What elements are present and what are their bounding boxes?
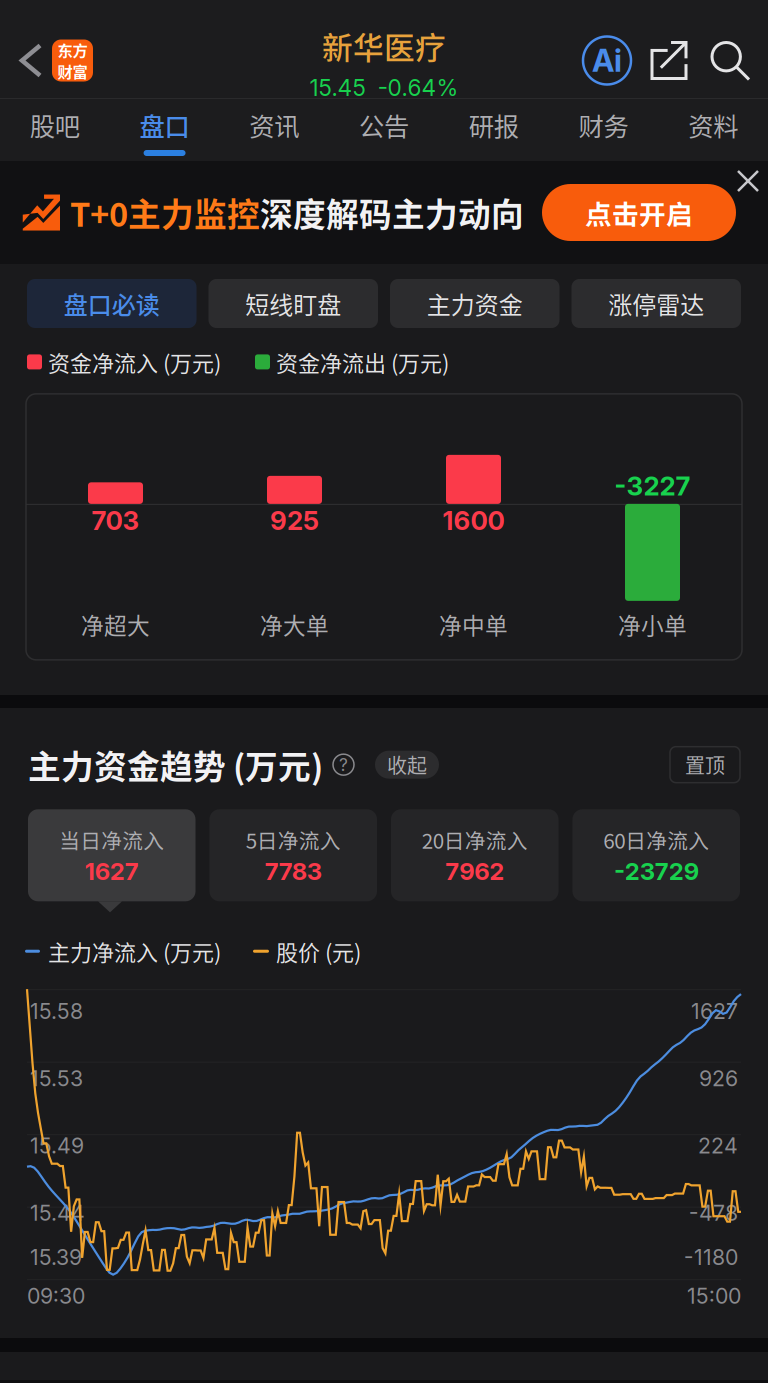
button[interactable]: 研报: [439, 99, 549, 161]
staticText: 703: [91, 505, 139, 536]
staticText: 点击开启: [585, 193, 693, 232]
staticText: 短线盯盘: [245, 286, 341, 321]
staticText: 09:30: [27, 1283, 85, 1309]
staticText: 收起: [387, 750, 427, 779]
button[interactable]: 资料: [658, 99, 768, 161]
staticText: 5日净流入: [246, 825, 341, 855]
staticText: 7962: [445, 857, 504, 886]
button[interactable]: 公告: [329, 99, 439, 161]
staticText: 1627: [85, 857, 139, 886]
staticText: -23729: [614, 857, 699, 886]
staticText: 净大单: [260, 608, 329, 641]
staticText: -478: [689, 1200, 738, 1226]
staticText: 财务: [578, 107, 628, 143]
staticText: 15:00: [687, 1283, 741, 1309]
staticText: 7783: [265, 857, 322, 886]
staticText: 净中单: [439, 608, 508, 641]
staticText: 1600: [442, 505, 504, 536]
button[interactable]: 当日净流入: [28, 809, 195, 901]
staticText: 当日净流入: [59, 825, 164, 855]
staticText: 盘口: [140, 107, 190, 143]
staticText: 15.39: [30, 1244, 82, 1270]
staticText: 15.49: [30, 1133, 84, 1159]
button[interactable]: 点击开启: [542, 184, 736, 241]
staticText: 净超大: [81, 608, 150, 641]
staticText: 东方: [57, 39, 87, 61]
staticText: 置顶: [685, 750, 725, 779]
staticText: 财富: [57, 60, 87, 82]
staticText: 新华医疗: [322, 24, 446, 68]
button[interactable]: AI assistant: [576, 0, 638, 99]
button[interactable]: Search: [700, 0, 768, 99]
staticText: 股价 (元): [276, 935, 361, 967]
button[interactable]: 置顶: [670, 747, 740, 783]
button[interactable]: 60日净流入: [572, 809, 740, 901]
staticText: 盘口必读: [64, 286, 160, 321]
staticText: 15.58: [30, 998, 83, 1024]
staticText: 资金净流出 (万元): [276, 346, 449, 378]
button[interactable]: Share: [638, 0, 700, 99]
button[interactable]: 盘口: [110, 99, 219, 161]
button[interactable]: 股吧: [0, 99, 110, 161]
staticText: 涨停雷达: [608, 286, 704, 321]
button[interactable]: 盘口必读: [27, 279, 196, 328]
button[interactable]: 短线盯盘: [208, 279, 378, 328]
button[interactable]: Back: [0, 0, 52, 99]
staticText: 资料: [688, 107, 738, 143]
staticText: ?: [339, 754, 348, 775]
staticText: -1180: [684, 1244, 738, 1270]
staticText: 资讯: [249, 107, 299, 143]
button[interactable]: East Money home: [52, 28, 93, 70]
button[interactable]: 收起: [375, 751, 439, 779]
staticText: 15.45 -0.64%: [309, 74, 458, 101]
staticText: 主力净流入 (万元): [48, 935, 221, 967]
button[interactable]: 主力资金: [390, 279, 559, 328]
staticText: 20日净流入: [422, 825, 528, 855]
staticText: 15.44: [30, 1200, 85, 1226]
staticText: 925: [270, 505, 319, 536]
staticText: 926: [699, 1065, 738, 1091]
button[interactable]: 资讯: [219, 99, 329, 161]
staticText: 主力资金趋势 (万元): [28, 741, 323, 788]
staticText: 股吧: [30, 107, 80, 143]
staticText: 15.53: [30, 1065, 83, 1091]
button[interactable]: 财务: [549, 99, 658, 161]
staticText: 研报: [469, 107, 519, 143]
staticText: 公告: [359, 107, 409, 143]
button[interactable]: Close banner: [728, 161, 768, 201]
staticText: 224: [698, 1133, 738, 1159]
staticText: 深度解码主力动向: [260, 189, 524, 236]
staticText: Ai: [592, 42, 622, 79]
staticText: 1627: [691, 998, 738, 1024]
staticText: 60日净流入: [603, 825, 709, 855]
staticText: T+0主力监控: [70, 189, 260, 236]
staticText: 资金净流入 (万元): [48, 346, 221, 378]
button[interactable]: 涨停雷达: [571, 279, 741, 328]
staticText: 主力资金: [427, 286, 523, 321]
staticText: -3227: [614, 470, 690, 502]
button[interactable]: 20日净流入: [391, 809, 558, 901]
button[interactable]: 5日净流入: [209, 809, 377, 901]
staticText: 净小单: [618, 608, 687, 641]
